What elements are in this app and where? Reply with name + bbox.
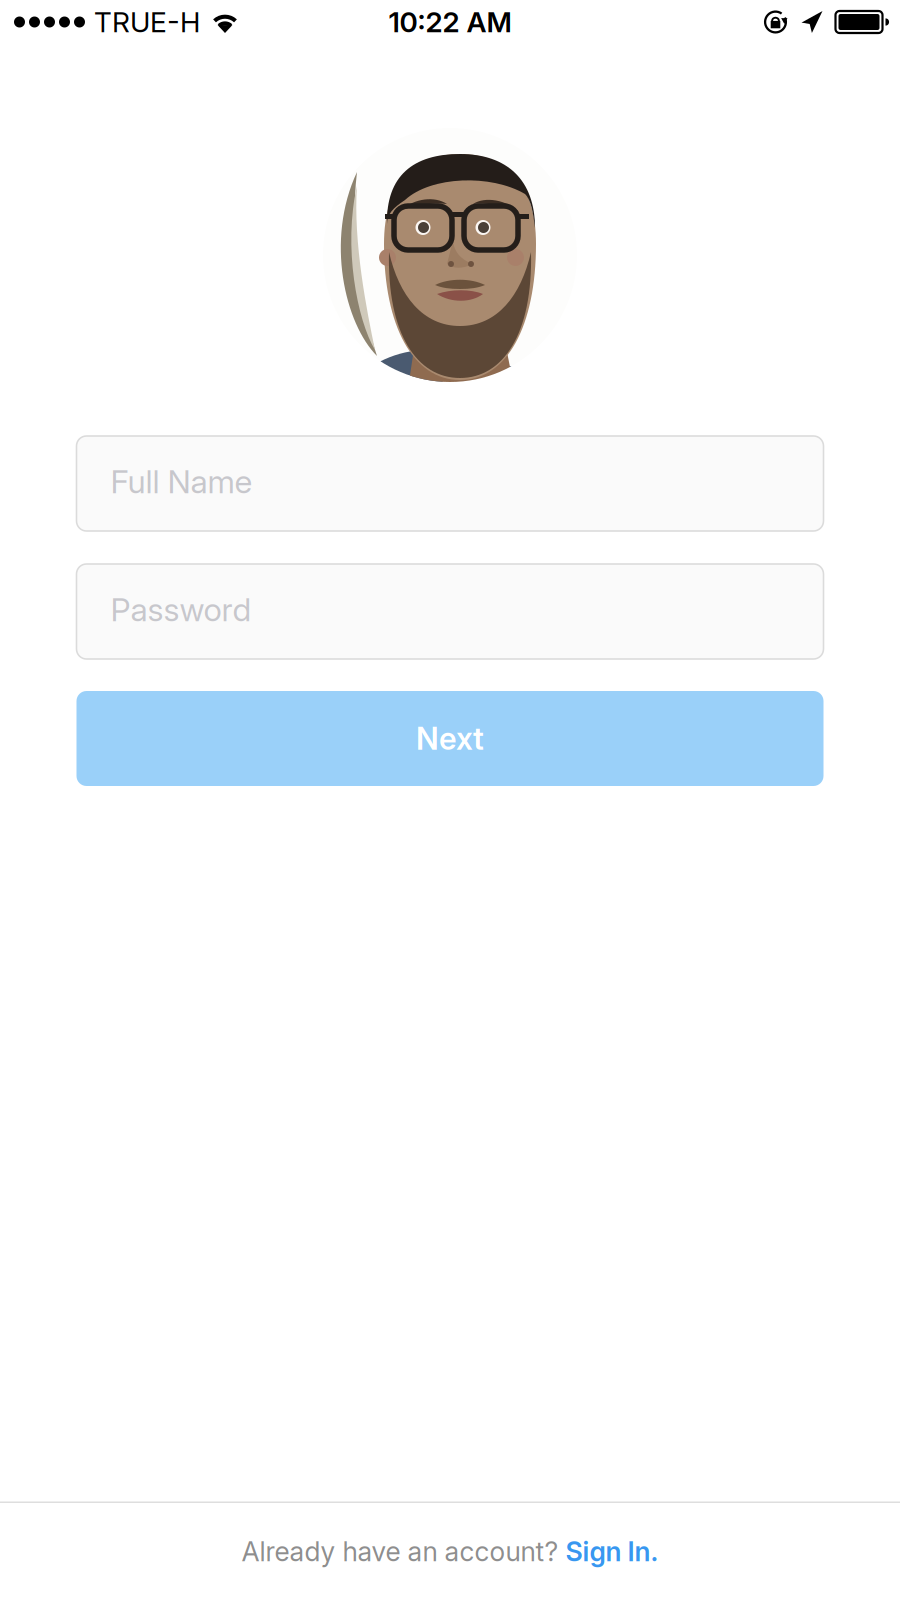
button[interactable]: Already have an account? [0,1503,900,1600]
staticText: TRUE-H [94,5,200,39]
button[interactable]: Add profile photo [323,128,577,382]
staticText: Full Name [110,462,252,501]
button[interactable]: Next [76,691,823,786]
staticText: Next [416,720,484,757]
button[interactable]: Full Name [76,436,823,531]
staticText: Already have an account? [241,1535,565,1568]
button[interactable]: Password [76,564,823,659]
staticText: Password [110,590,251,629]
staticText: 10:22 AM [388,5,511,39]
staticText: Sign In. [565,1535,658,1568]
